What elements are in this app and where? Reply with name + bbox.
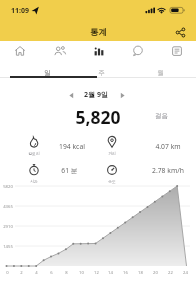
staticText: 18	[138, 270, 143, 276]
button[interactable]	[92, 161, 132, 187]
staticText: 14	[108, 270, 113, 276]
staticText: 월	[157, 69, 164, 77]
staticText: 61 분	[61, 166, 78, 175]
staticText: 칼로리	[28, 151, 40, 156]
button[interactable]	[40, 41, 79, 61]
staticText: 0	[6, 270, 9, 276]
staticText: 2.78 km/h	[152, 166, 184, 175]
staticText: 2910	[3, 224, 13, 230]
staticText: 일	[44, 69, 51, 77]
button[interactable]	[0, 41, 40, 61]
button[interactable]	[119, 92, 126, 99]
staticText: 1455	[3, 244, 13, 250]
staticText: 2월 9일	[84, 90, 108, 100]
staticText: 24	[183, 270, 188, 276]
staticText: 16	[123, 270, 128, 276]
staticText: 22	[168, 270, 173, 276]
staticText: 4	[35, 270, 38, 276]
staticText: 거리	[108, 151, 116, 156]
staticText: 4.07 km	[155, 142, 181, 151]
button[interactable]	[14, 161, 54, 187]
staticText: 시간	[30, 179, 38, 184]
button[interactable]	[118, 41, 157, 61]
staticText: 6	[50, 270, 53, 276]
staticText: 8	[65, 270, 68, 276]
button[interactable]	[92, 133, 132, 159]
button[interactable]: 월	[100, 66, 196, 80]
button[interactable]	[79, 41, 118, 61]
staticText: 194 kcal	[59, 142, 85, 151]
staticText: 속도	[108, 179, 116, 184]
staticText: 5,820	[75, 105, 121, 129]
button[interactable]	[68, 92, 75, 99]
staticText: 12	[94, 270, 99, 276]
staticText: 10	[79, 270, 84, 276]
staticText: 20	[153, 270, 158, 276]
staticText: 주	[98, 69, 105, 77]
staticText: 5820	[3, 184, 13, 190]
staticText: 11:09	[11, 6, 29, 16]
button[interactable]: 주	[41, 66, 161, 80]
staticText: 통계	[90, 27, 107, 38]
button[interactable]	[14, 133, 54, 159]
staticText: 2	[20, 270, 23, 276]
staticText: 걸음	[155, 112, 168, 120]
button[interactable]	[172, 24, 188, 40]
staticText: 4365	[3, 204, 13, 210]
button[interactable]	[157, 41, 196, 61]
button[interactable]: 일	[0, 66, 107, 80]
